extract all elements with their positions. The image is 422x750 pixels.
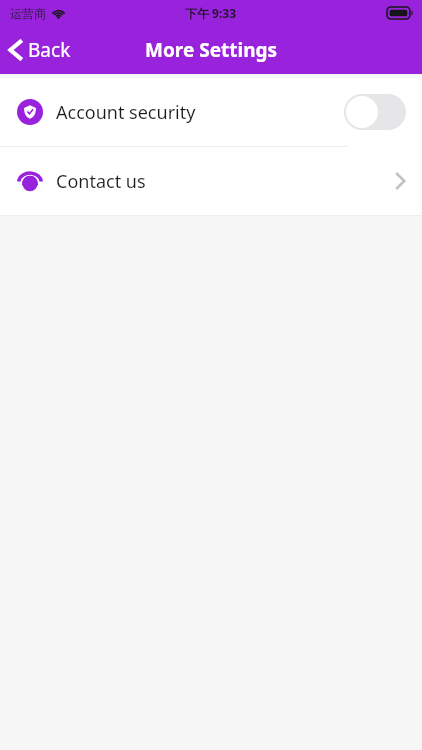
staticText: Account security	[56, 100, 196, 125]
staticText: Contact us	[56, 169, 146, 194]
button[interactable]: Back	[0, 26, 83, 74]
button[interactable]: Contact us	[0, 147, 422, 215]
staticText: Back	[28, 37, 71, 63]
other: Open	[394, 171, 406, 191]
staticText: 运营商	[10, 6, 46, 21]
button[interactable]: Account security toggle	[344, 94, 406, 130]
staticText: More Settings	[145, 37, 278, 63]
button[interactable]: Account security	[0, 78, 422, 146]
staticText: 下午 9:33	[185, 5, 237, 21]
